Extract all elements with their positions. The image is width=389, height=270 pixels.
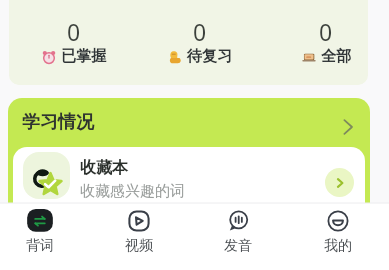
- button[interactable]: 发音: [212, 203, 264, 270]
- staticText: 收藏本: [80, 158, 128, 178]
- staticText: 待复习: [187, 47, 232, 66]
- button[interactable]: 我的: [312, 203, 364, 270]
- staticText: 视频: [125, 237, 153, 255]
- button[interactable]: 视频: [113, 203, 165, 270]
- staticText: 0: [193, 16, 207, 47]
- staticText: 已掌握: [61, 47, 106, 66]
- staticText: 发音: [224, 237, 252, 255]
- staticText: 0: [319, 16, 333, 47]
- staticText: 收藏感兴趣的词: [80, 182, 185, 201]
- staticText: 我的: [324, 237, 352, 255]
- button[interactable]: [9, 0, 368, 85]
- button[interactable]: 背词: [14, 203, 66, 270]
- staticText: 背词: [26, 237, 54, 255]
- button[interactable]: 收藏本: [13, 147, 365, 237]
- button[interactable]: 打开收藏本: [325, 168, 354, 197]
- staticText: 全部: [321, 47, 351, 66]
- staticText: 0: [67, 16, 81, 47]
- staticText: 学习情况: [22, 111, 94, 134]
- button[interactable]: 学习情况: [8, 98, 370, 146]
